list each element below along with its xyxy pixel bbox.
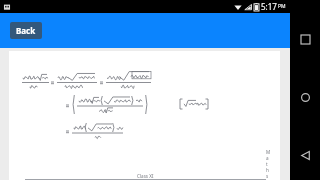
staticText: Back [16, 25, 36, 36]
button[interactable]: Home [290, 82, 320, 112]
button[interactable]: Back [290, 140, 320, 170]
button[interactable]: Back [10, 22, 42, 39]
staticText: PM [278, 3, 286, 10]
button[interactable]: Recent apps [290, 24, 320, 54]
button[interactable]: Class XI [9, 51, 280, 180]
staticText: 5:17 [261, 1, 277, 12]
staticText: Class XI [137, 173, 154, 179]
